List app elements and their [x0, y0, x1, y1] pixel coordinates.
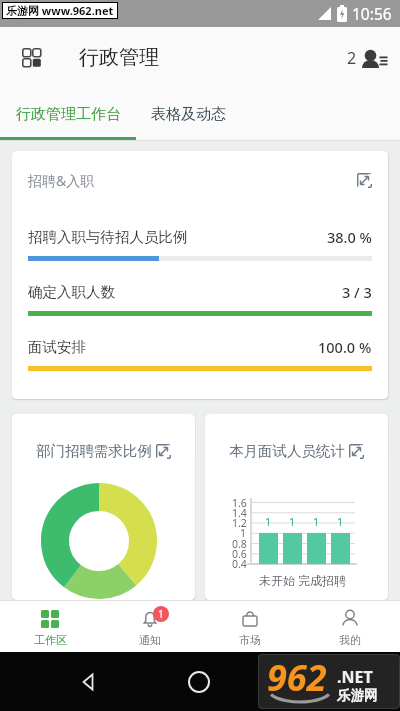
- button[interactable]: 本月面试人员统计: [205, 414, 388, 600]
- staticText: 0.8: [232, 537, 247, 551]
- staticText: 3 / 3: [342, 282, 372, 302]
- staticText: 962: [267, 654, 327, 702]
- staticText: 我的: [339, 633, 361, 647]
- staticText: 乐游网 www.962.net: [6, 3, 114, 18]
- staticText: 100.0 %: [318, 337, 372, 357]
- staticText: 表格及动态: [151, 105, 226, 124]
- staticText: 1.2: [232, 516, 247, 530]
- staticText: 确定入职人数: [28, 283, 115, 301]
- staticText: 部门招聘需求比例: [36, 442, 152, 460]
- staticText: 0.6: [232, 547, 247, 561]
- staticText: 10:56: [352, 3, 392, 24]
- button[interactable]: 市场: [200, 601, 300, 652]
- staticText: 1: [158, 607, 164, 621]
- staticText: 1.4: [232, 506, 247, 520]
- button[interactable]: [188, 671, 210, 693]
- staticText: 工作区: [34, 633, 67, 647]
- staticText: 乐游网: [337, 687, 378, 704]
- staticText: 1: [240, 526, 247, 540]
- staticText: 1: [313, 514, 320, 529]
- staticText: .NET: [337, 666, 373, 688]
- button[interactable]: 我的: [300, 601, 400, 652]
- staticText: 行政管理工作台: [16, 105, 121, 124]
- staticText: 面试安排: [28, 338, 86, 356]
- button[interactable]: 工作区: [0, 601, 100, 652]
- staticText: 市场: [239, 633, 261, 647]
- staticText: 1: [265, 514, 272, 529]
- staticText: 未开始 完成招聘: [259, 572, 347, 588]
- button[interactable]: 表格及动态: [136, 88, 240, 141]
- button[interactable]: 部门招聘需求比例: [12, 414, 195, 600]
- staticText: 招聘入职与待招人员比例: [28, 228, 188, 246]
- button[interactable]: 1: [100, 601, 200, 652]
- staticText: 1: [337, 514, 344, 529]
- staticText: 38.0 %: [327, 227, 372, 247]
- staticText: 1.6: [232, 496, 247, 510]
- button[interactable]: 2: [347, 46, 387, 70]
- button[interactable]: [22, 48, 41, 67]
- button[interactable]: 行政管理工作台: [0, 88, 136, 141]
- staticText: 0.4: [232, 557, 247, 571]
- button[interactable]: [80, 673, 98, 691]
- staticText: 招聘&入职: [28, 171, 95, 190]
- staticText: 通知: [139, 633, 161, 647]
- staticText: 本月面试人员统计: [229, 442, 345, 460]
- staticText: 行政管理: [79, 45, 159, 70]
- button[interactable]: 招聘&入职: [12, 151, 388, 399]
- staticText: 2: [347, 47, 357, 69]
- staticText: 1: [289, 514, 296, 529]
